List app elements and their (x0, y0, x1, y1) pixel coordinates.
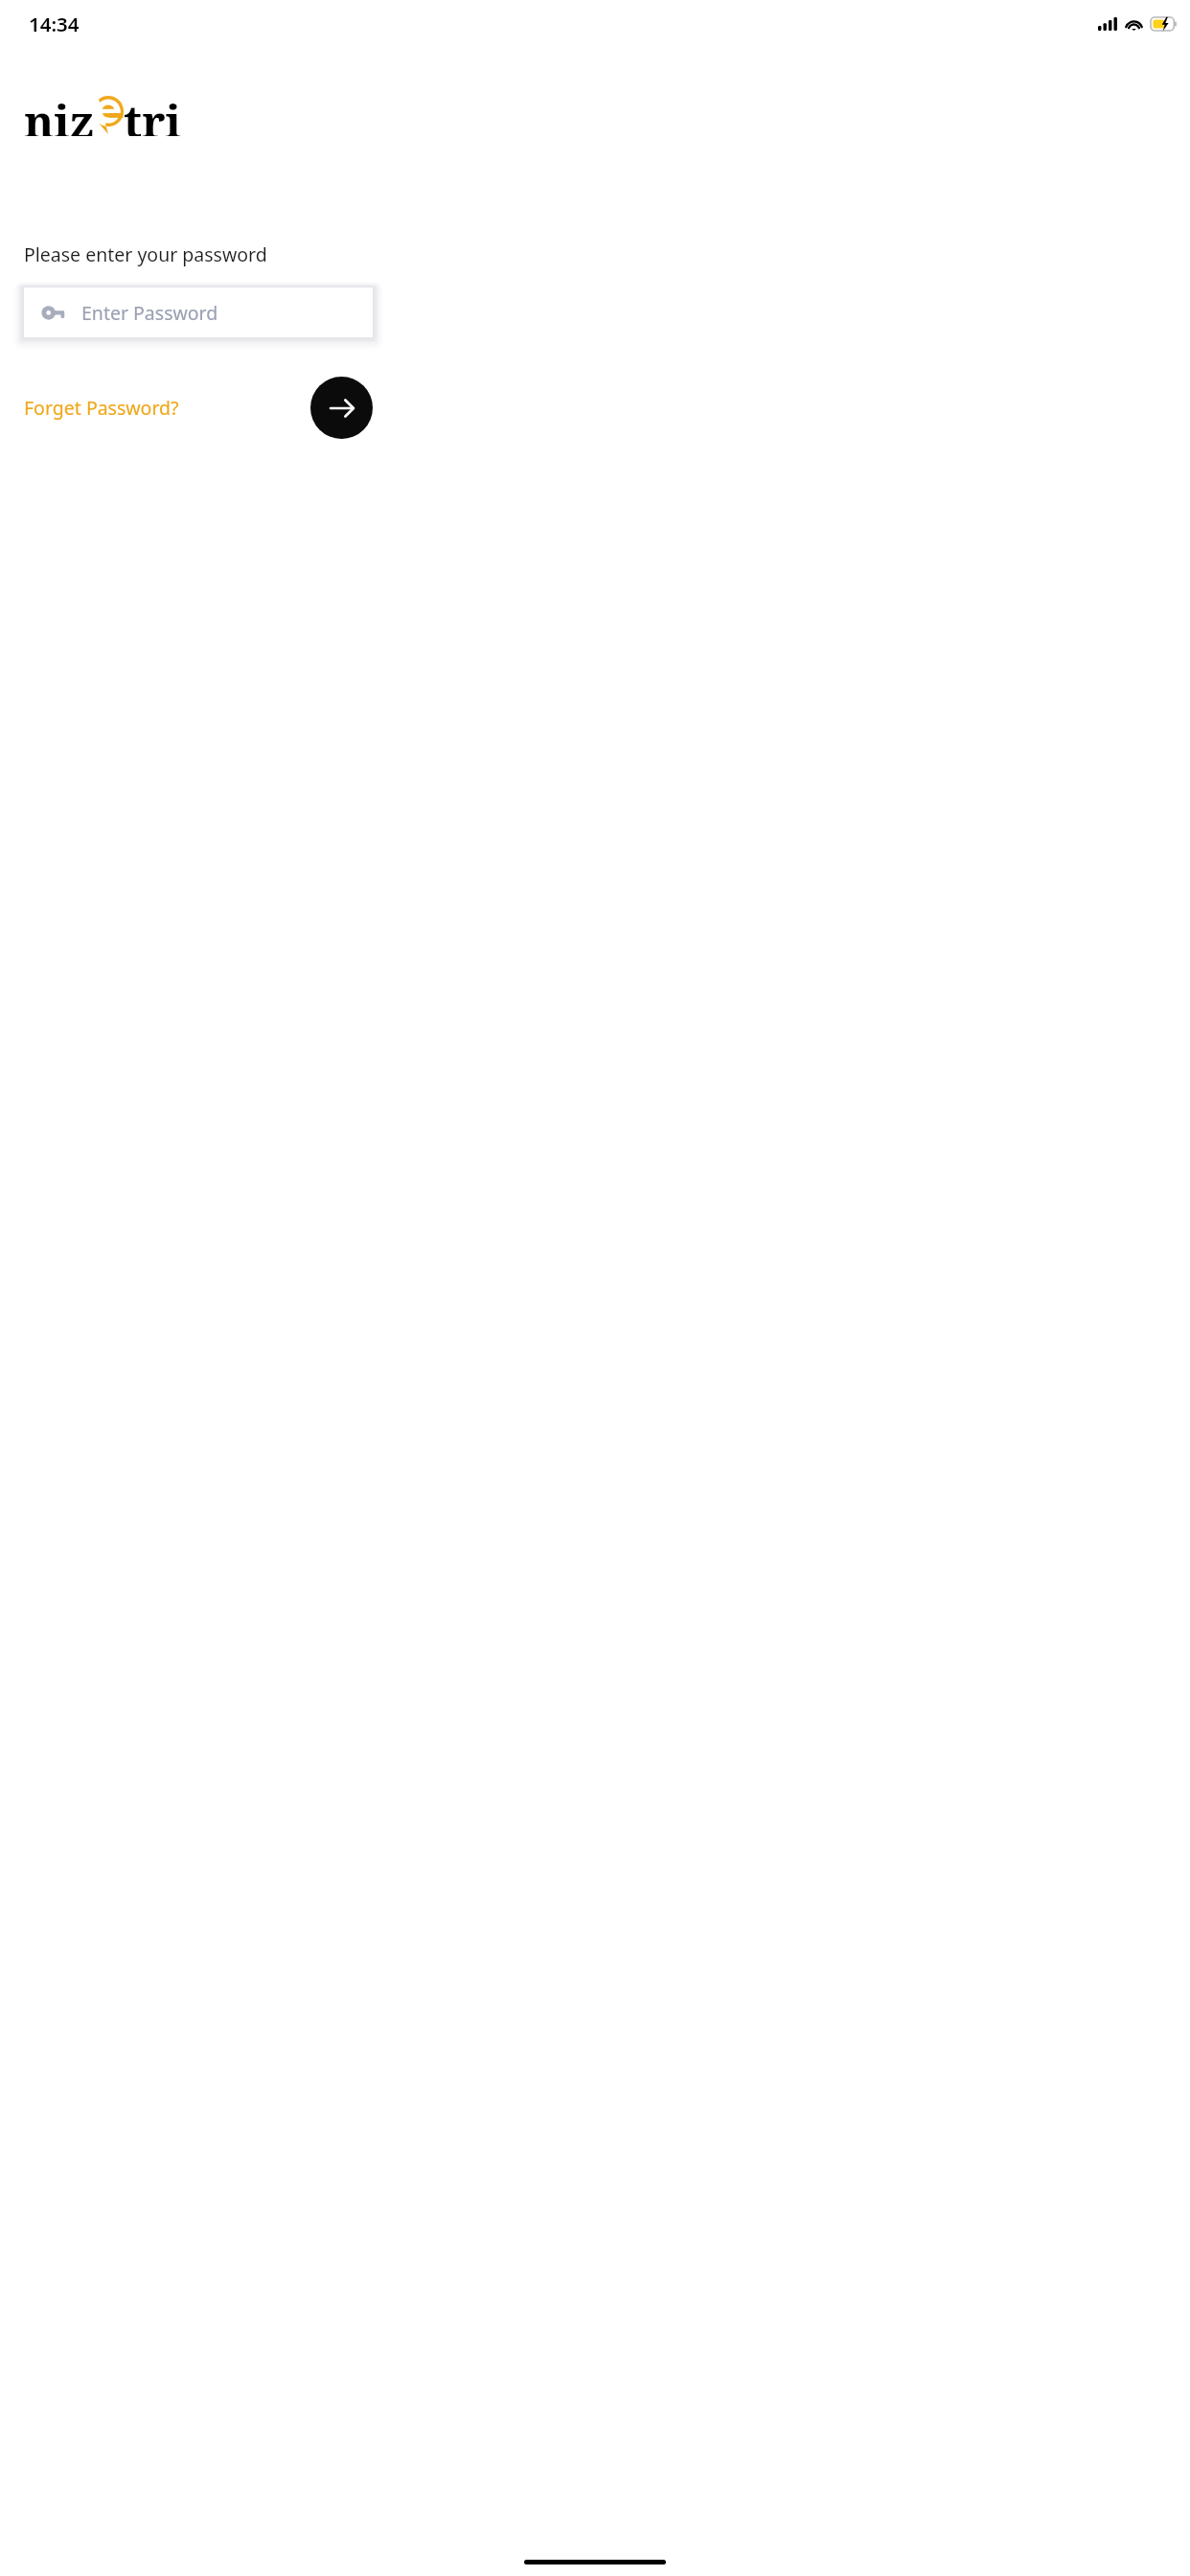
button[interactable]: Continue (310, 377, 373, 439)
staticText: Please enter your password (24, 241, 267, 267)
staticText: trip (124, 90, 195, 136)
button[interactable]: Forget Password? (24, 388, 179, 426)
staticText: Forget Password? (24, 395, 179, 421)
staticText: 14:34 (29, 11, 80, 37)
button[interactable]: Password (24, 287, 373, 337)
staticText: niz (24, 90, 94, 136)
other: Password (41, 302, 62, 323)
staticText: Enter Password (81, 300, 218, 326)
